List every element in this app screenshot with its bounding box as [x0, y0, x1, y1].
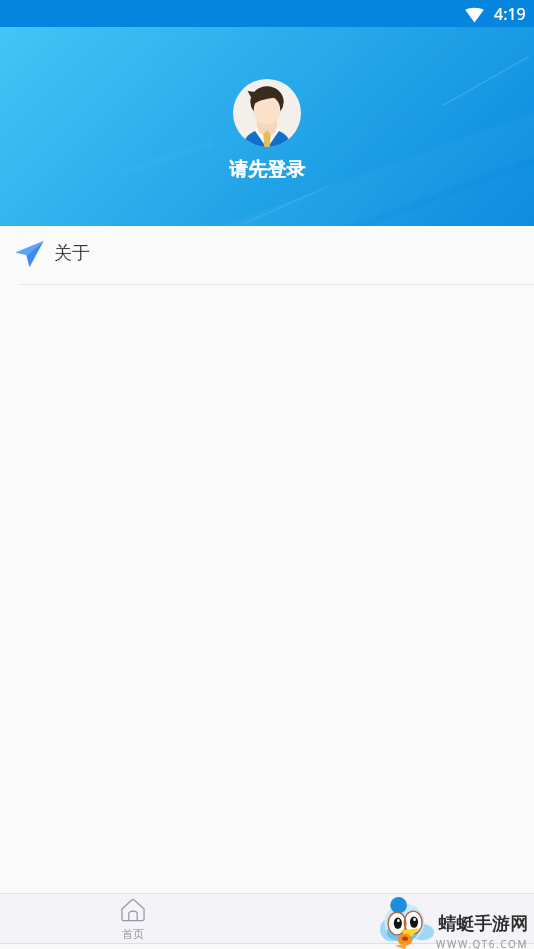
- staticText: 请先登录: [229, 158, 305, 182]
- staticText: 关于: [54, 242, 90, 265]
- button[interactable]: Log in: [205, 79, 329, 182]
- staticText: 4:19: [494, 3, 526, 25]
- button[interactable]: 关于: [0, 226, 534, 284]
- staticText: 蜻蜓手游网: [438, 913, 528, 936]
- staticText: WWW.QT6.COM: [436, 937, 529, 949]
- button[interactable]: 首页: [103, 894, 163, 944]
- staticText: 首页: [122, 927, 144, 941]
